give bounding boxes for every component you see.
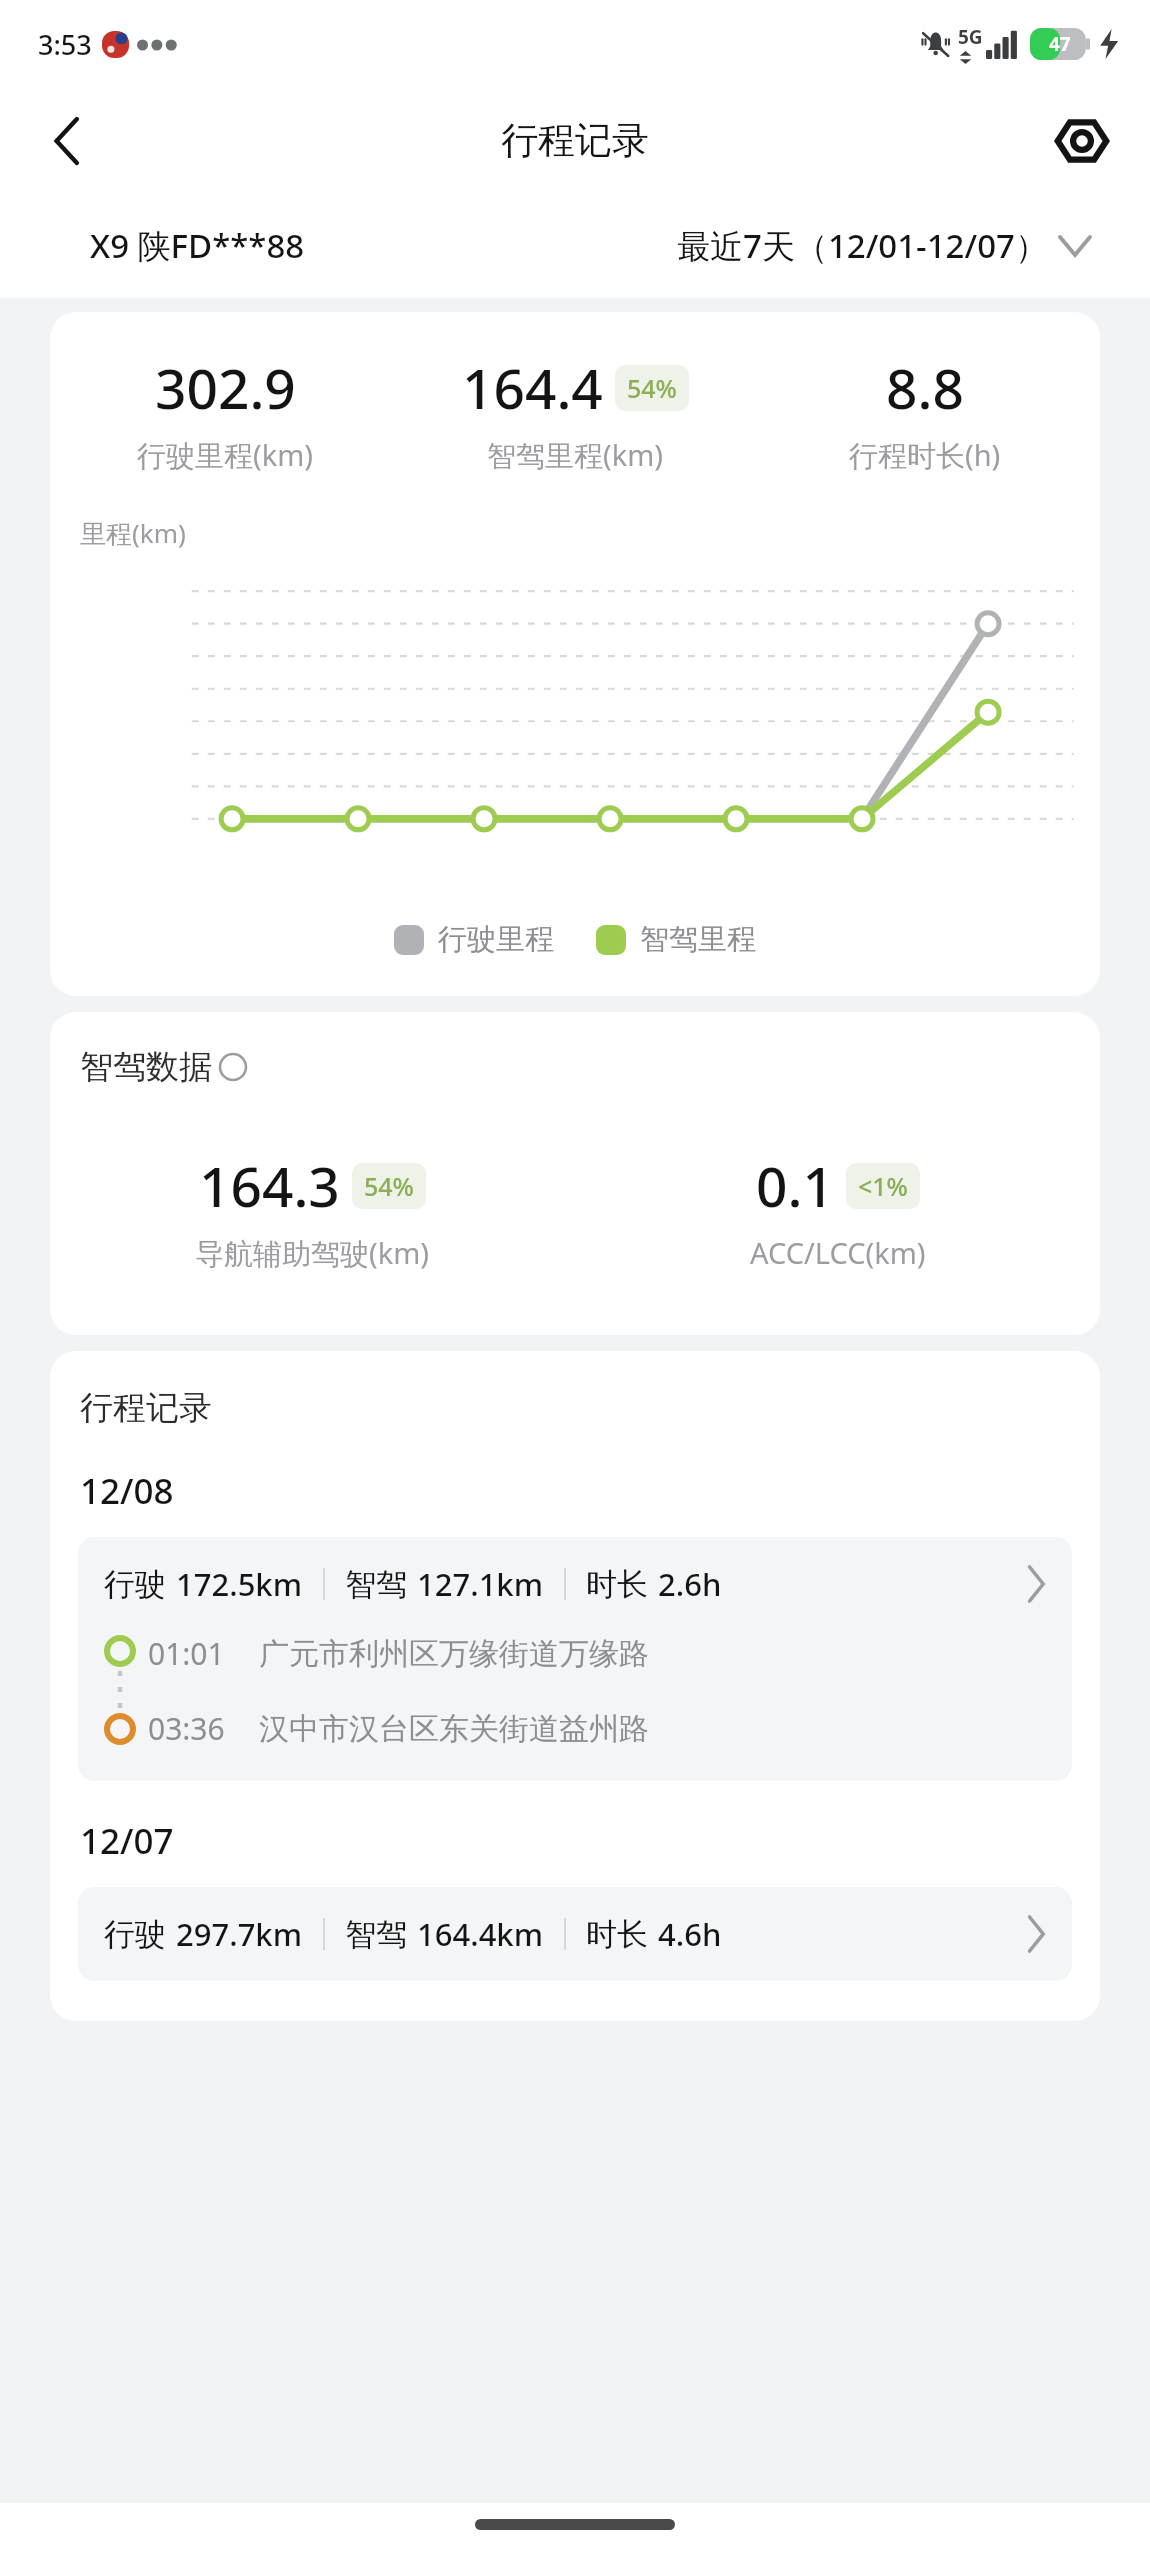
- staticText: 行驶: [104, 1915, 166, 1954]
- staticText: ACC/LCC(km): [750, 1233, 926, 1272]
- staticText: 4.6h: [658, 1913, 722, 1955]
- staticText: 行驶里程(km): [137, 435, 314, 475]
- button[interactable]: 最近7天（12/01-12/07）: [677, 223, 1090, 268]
- staticText: 智驾里程: [640, 921, 756, 958]
- staticText: 297.7km: [176, 1913, 303, 1955]
- staticText: 172.5km: [176, 1563, 303, 1605]
- staticText: 5G: [958, 24, 983, 50]
- staticText: 54%: [627, 371, 677, 405]
- staticText: 智驾里程(km): [487, 435, 664, 475]
- staticText: 导航辅助驾驶(km): [195, 1233, 430, 1273]
- staticText: 2.6h: [658, 1563, 722, 1605]
- staticText: 0.1: [756, 1148, 834, 1223]
- staticText: 广元市利州区万缘街道万缘路: [259, 1635, 649, 1673]
- staticText: 行程记录: [80, 1387, 212, 1429]
- other: Open trip detail: [1026, 1917, 1046, 1951]
- button[interactable]: Back: [34, 108, 100, 174]
- staticText: 8.8: [886, 350, 964, 425]
- other: Info: [218, 1052, 248, 1082]
- staticText: 汉中市汉台区东关街道益州路: [259, 1710, 649, 1748]
- button[interactable]: 行驶里程: [394, 921, 554, 958]
- staticText: 302.9: [155, 350, 296, 425]
- button[interactable]: 智驾里程: [596, 921, 756, 958]
- staticText: 164.4km: [417, 1913, 544, 1955]
- button[interactable]: 行驶: [78, 1887, 1072, 1981]
- staticText: 03:36: [148, 1708, 225, 1749]
- staticText: 行驶: [104, 1565, 166, 1604]
- staticText: 01:01: [148, 1633, 225, 1674]
- button[interactable]: 行驶: [78, 1537, 1072, 1781]
- button[interactable]: 智驾数据: [80, 1046, 248, 1088]
- staticText: 时长: [586, 1915, 648, 1954]
- staticText: 时长: [586, 1565, 648, 1604]
- staticText: 智驾数据: [80, 1046, 212, 1088]
- button[interactable]: Settings: [1046, 105, 1118, 177]
- staticText: <1%: [858, 1169, 908, 1203]
- staticText: 行程记录: [501, 117, 649, 164]
- staticText: 最近7天（12/01-12/07）: [677, 223, 1048, 268]
- staticText: 里程(km): [80, 515, 186, 551]
- staticText: 54%: [364, 1169, 414, 1203]
- staticText: 智驾: [345, 1915, 407, 1954]
- staticText: 12/07: [80, 1817, 174, 1865]
- staticText: 164.3: [199, 1148, 340, 1223]
- staticText: 127.1km: [417, 1563, 544, 1605]
- staticText: 164.4: [462, 350, 603, 425]
- staticText: 12/08: [80, 1467, 174, 1515]
- staticText: 行程时长(h): [849, 435, 1001, 475]
- other: Open trip detail: [1026, 1567, 1046, 1601]
- staticText: 行驶里程: [438, 921, 554, 958]
- staticText: 3:53: [38, 26, 92, 63]
- staticText: 智驾: [345, 1565, 407, 1604]
- button[interactable]: X9 陕FD***88: [90, 223, 305, 268]
- staticText: 47: [1049, 31, 1071, 57]
